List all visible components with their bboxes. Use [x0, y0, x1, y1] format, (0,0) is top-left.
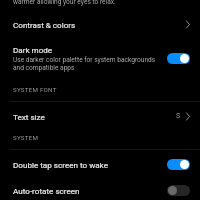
button[interactable]: Text size	[0, 104, 200, 128]
other: Open contrast and colors	[186, 20, 190, 29]
staticText: SYSTEM FONT	[13, 86, 57, 93]
staticText: warmer allowing your eyes to relax.	[13, 0, 116, 6]
staticText: S	[176, 112, 181, 120]
staticText: Text size	[13, 112, 45, 121]
staticText: Contrast & colors	[13, 20, 76, 29]
other: Open text size	[186, 112, 190, 121]
staticText: Double tap screen to wake	[13, 160, 108, 169]
button[interactable]: Auto-rotate screen	[167, 185, 190, 196]
staticText: Auto-rotate screen	[13, 186, 80, 195]
button[interactable]: Auto-rotate screen	[0, 178, 200, 200]
button[interactable]: Double tap screen to wake	[167, 159, 190, 170]
button[interactable]: Contrast & colors	[0, 13, 200, 36]
staticText: SYSTEM	[13, 134, 39, 141]
staticText: Use darker color palette for system back…	[13, 56, 163, 72]
button[interactable]: Dark mode	[167, 53, 190, 64]
button[interactable]: Dark mode	[0, 40, 200, 76]
staticText: Dark mode	[13, 45, 53, 54]
button[interactable]: Double tap screen to wake	[0, 152, 200, 176]
